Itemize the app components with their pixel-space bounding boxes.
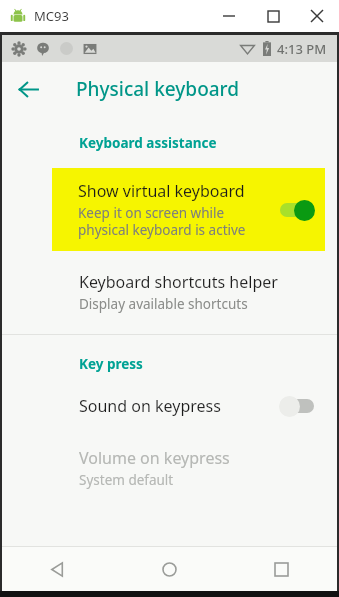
button[interactable]: Maximize xyxy=(251,0,295,32)
button[interactable]: Sound on keypress xyxy=(2,395,337,417)
button[interactable]: Volume on keypress xyxy=(2,447,337,489)
staticText: Sound on keypress xyxy=(79,395,279,417)
button[interactable]: Back xyxy=(2,547,113,591)
button[interactable]: Home xyxy=(113,547,225,591)
button[interactable]: Keyboard shortcuts helper xyxy=(2,271,337,313)
button[interactable]: Minimize xyxy=(207,0,251,32)
staticText: Show virtual keyboard xyxy=(78,180,245,202)
button[interactable]: Back xyxy=(2,63,54,115)
staticText: System default xyxy=(79,471,174,489)
staticText: Keyboard assistance xyxy=(79,134,217,152)
staticText: Display available shortcuts xyxy=(79,295,248,313)
staticText: 4:13 PM xyxy=(277,40,327,58)
staticText: Physical keyboard xyxy=(76,76,240,102)
staticText: Volume on keypress xyxy=(79,447,230,469)
staticText: Keyboard shortcuts helper xyxy=(79,271,278,293)
staticText: Key press xyxy=(79,355,143,373)
button[interactable]: Recent apps xyxy=(225,547,337,591)
staticText: MC93 xyxy=(34,7,69,25)
button[interactable]: Close xyxy=(295,0,339,32)
button[interactable]: Show virtual keyboard xyxy=(52,168,325,251)
staticText: Keep it on screen while physical keyboar… xyxy=(78,204,246,239)
